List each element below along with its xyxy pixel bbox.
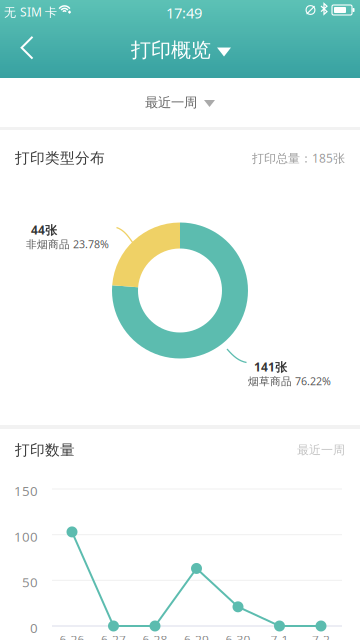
staticText: 7-1 — [270, 632, 288, 640]
staticText: 6-26 — [59, 632, 84, 640]
staticText: 50 — [22, 573, 38, 591]
staticText: 17:49 — [166, 3, 202, 22]
staticText: 141张 — [254, 359, 287, 375]
staticText: 100 — [14, 528, 38, 545]
staticText: 最近一周 — [297, 443, 345, 457]
button[interactable]: 最近一周 — [0, 78, 360, 127]
staticText: 打印数量 — [15, 441, 75, 459]
staticText: 打印总量：185张 — [252, 150, 345, 166]
staticText: 非烟商品 23.78% — [26, 237, 109, 251]
staticText: 打印类型分布 — [15, 149, 105, 167]
staticText: 烟草商品 76.22% — [248, 374, 331, 388]
staticText: 无 SIM 卡 — [4, 4, 57, 20]
staticText: 0 — [30, 619, 38, 637]
staticText: 6-28 — [142, 632, 167, 640]
staticText: 6-29 — [184, 632, 209, 640]
staticText: 6-27 — [101, 632, 126, 640]
staticText: 打印概览 — [131, 38, 211, 62]
staticText: 44张 — [31, 222, 57, 238]
button[interactable]: 返回 — [5, 26, 49, 70]
staticText: 7-2 — [312, 632, 330, 640]
staticText: 150 — [14, 482, 38, 500]
button[interactable]: 打印概览 — [101, 28, 261, 72]
staticText: 6-30 — [225, 632, 250, 640]
staticText: 最近一周 — [145, 94, 197, 111]
